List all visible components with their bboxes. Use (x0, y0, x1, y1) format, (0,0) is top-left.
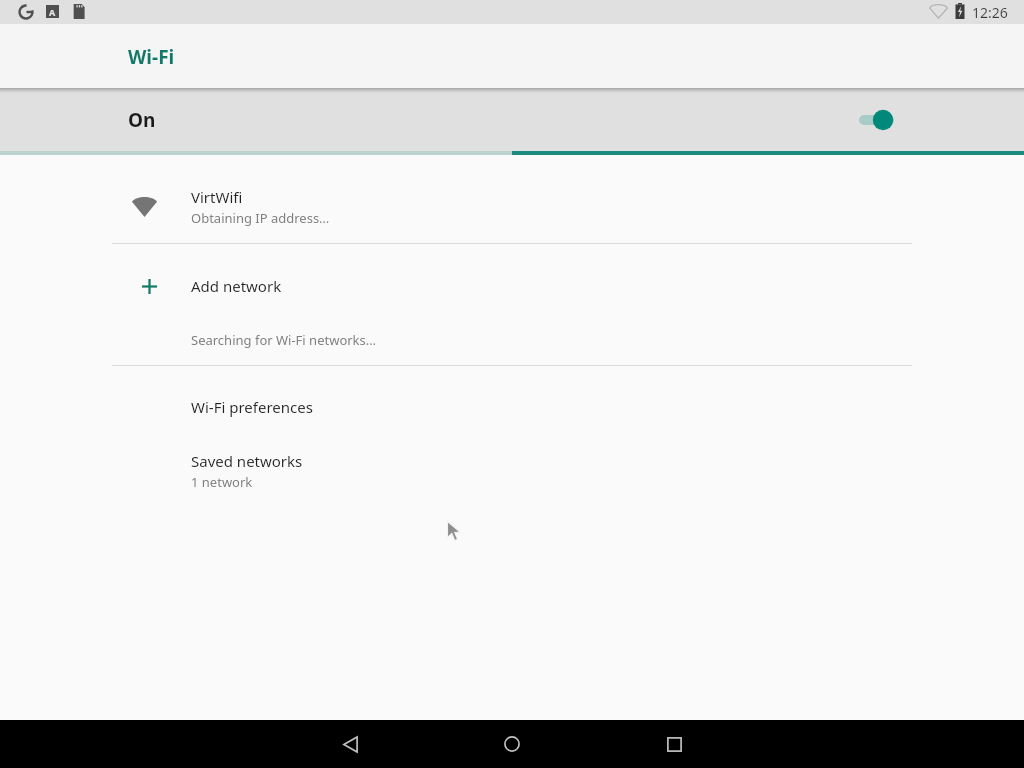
staticText: Add network (191, 276, 282, 296)
button[interactable]: VirtWifi (0, 156, 1024, 243)
staticText: Saved networks (191, 451, 303, 471)
button[interactable]: Back (302, 720, 398, 768)
staticText: A (49, 6, 56, 18)
staticText: VirtWifi (191, 187, 243, 207)
staticText: Wi-Fi preferences (191, 397, 313, 417)
staticText: Wi-Fi (128, 44, 175, 70)
staticText: 1 network (191, 473, 253, 491)
button[interactable]: Saved networks (0, 436, 1024, 500)
button[interactable]: Home (464, 720, 560, 768)
button[interactable]: Add network (0, 258, 1024, 316)
staticText: Obtaining IP address… (191, 209, 330, 227)
staticText: 12:26 (972, 3, 1008, 22)
staticText: Searching for Wi-Fi networks… (191, 331, 377, 349)
button[interactable]: Recent apps (626, 720, 722, 768)
button[interactable]: On (0, 88, 1024, 151)
staticText: On (128, 107, 156, 133)
button[interactable]: Wi-Fi preferences (0, 380, 1024, 436)
